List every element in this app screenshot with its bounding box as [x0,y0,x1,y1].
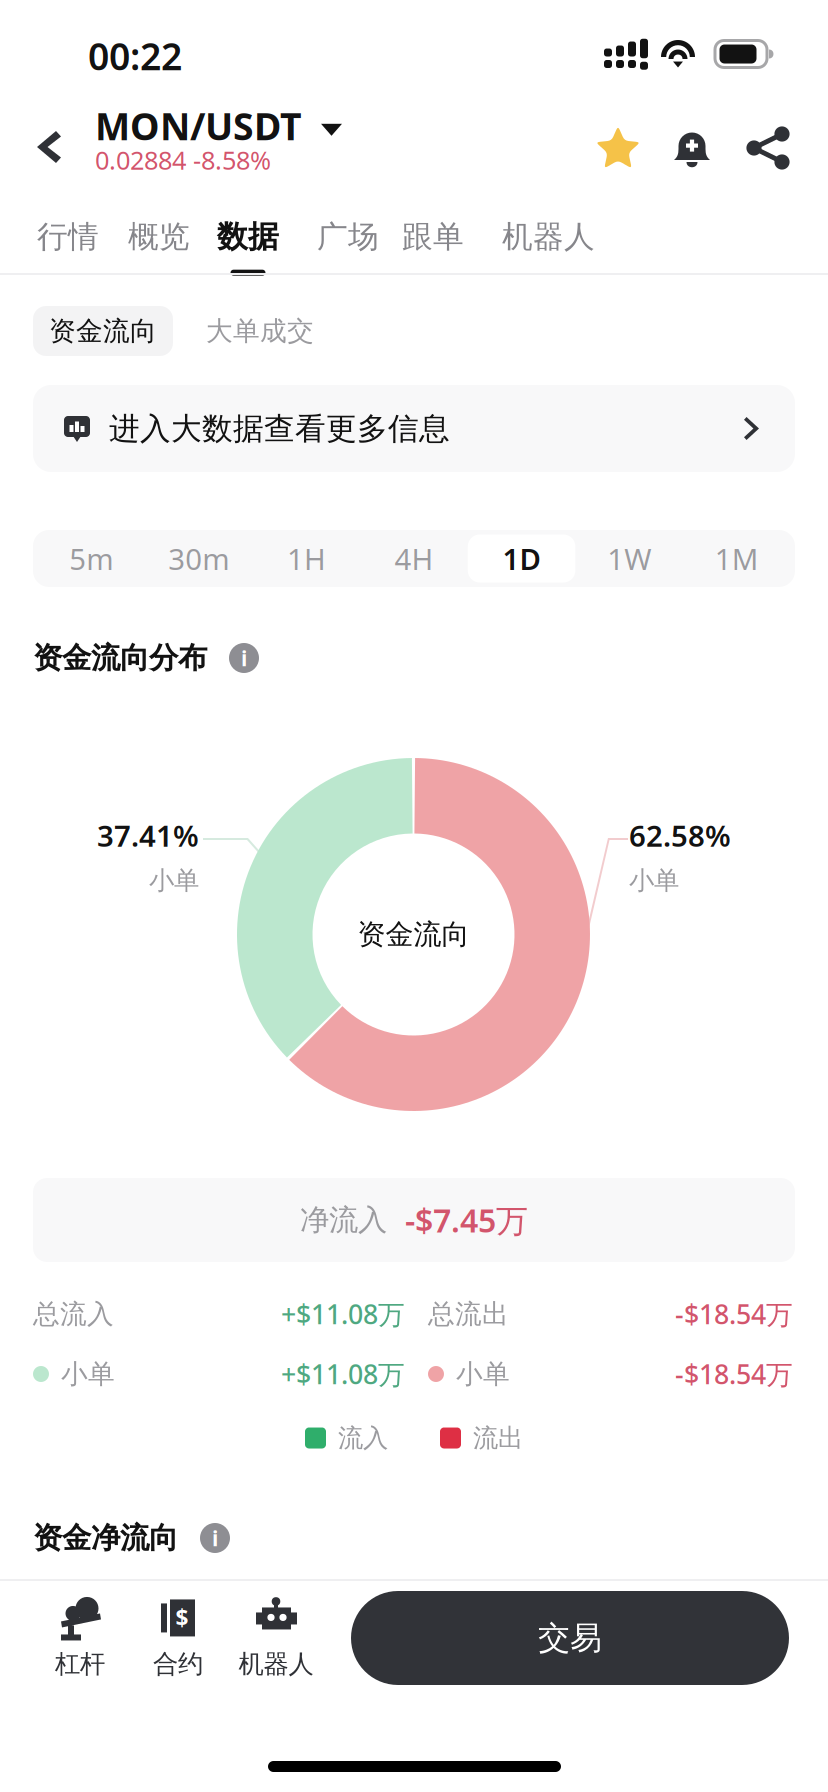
button[interactable]: 机器人 [488,212,609,282]
button[interactable]: 广场 [303,212,393,282]
button[interactable]: 机器人 [227,1596,325,1679]
button[interactable]: 资金流向 [33,306,173,356]
staticText: 流出 [473,1422,523,1453]
button[interactable]: 行情 [23,212,113,282]
staticText: 4H [394,539,433,578]
staticText: 数据 [217,218,279,256]
button[interactable]: $ [129,1596,227,1679]
button[interactable]: Info [229,643,259,673]
staticText: 资金流向分布 [33,640,207,676]
button[interactable]: 1M [683,534,790,582]
button[interactable]: 1W [575,534,683,582]
staticText: 机器人 [502,218,595,256]
staticText: 跟单 [402,218,464,256]
staticText: i [212,1524,218,1552]
staticText: 行情 [37,218,99,256]
button[interactable]: Back [19,113,79,181]
staticText: -$18.54万 [675,1356,793,1392]
button[interactable]: 大单成交 [190,306,330,356]
staticText: 交易 [538,1618,602,1658]
staticText: 大单成交 [206,315,314,347]
staticText: MON/USDT [95,101,302,151]
staticText: 机器人 [238,1648,313,1679]
staticText: 净流入 [300,1202,387,1238]
staticText: 30m [168,539,229,578]
button[interactable]: Favorite [592,122,644,174]
staticText: 1M [715,539,759,578]
button[interactable]: 杠杆 [31,1596,129,1679]
button[interactable]: 5m [37,534,145,582]
staticText: 5m [69,539,113,578]
staticText: i [241,644,247,672]
button[interactable]: 跟单 [388,212,478,282]
button[interactable]: 4H [360,534,468,582]
staticText: 总流出 [428,1298,509,1330]
staticText: 资金流向 [357,917,469,952]
button[interactable]: Info [200,1523,230,1553]
staticText: 杠杆 [55,1648,105,1679]
button[interactable]: 数据 [203,212,293,282]
staticText: 1D [503,539,541,578]
staticText: 概览 [128,218,190,256]
staticText: 37.41% [97,816,199,855]
staticText: 合约 [153,1648,203,1679]
staticText: 小单 [456,1358,510,1390]
staticText: 小单 [61,1358,115,1390]
staticText: 1H [287,539,326,578]
button[interactable]: Price alert [666,120,718,172]
button[interactable]: 进入大数据查看更多信息 [0,385,828,472]
staticText: 总流入 [33,1298,114,1330]
staticText: 广场 [317,218,379,256]
staticText: 小单 [629,865,679,896]
button[interactable]: 1H [253,534,360,582]
staticText: +$11.08万 [281,1296,405,1332]
staticText: 资金流向 [49,315,157,347]
staticText: +$11.08万 [281,1356,405,1392]
button[interactable]: 1D [468,534,575,582]
button[interactable]: 概览 [114,212,204,282]
staticText: 62.58% [629,816,731,855]
staticText: $ [175,1602,188,1632]
staticText: 小单 [149,865,199,896]
staticText: 00:22 [88,31,182,81]
staticText: 进入大数据查看更多信息 [109,410,450,448]
staticText: -$18.54万 [675,1296,793,1332]
staticText: 1W [607,539,651,578]
staticText: -$7.45万 [405,1199,528,1241]
staticText: 流入 [338,1422,388,1453]
button[interactable]: 30m [145,534,253,582]
button[interactable]: 交易 [351,1591,789,1685]
staticText: 资金净流向 [33,1520,178,1556]
staticText: 0.02884 -8.58% [95,143,271,177]
button[interactable]: MON/USDT [95,101,342,151]
button[interactable]: Share [742,122,794,174]
